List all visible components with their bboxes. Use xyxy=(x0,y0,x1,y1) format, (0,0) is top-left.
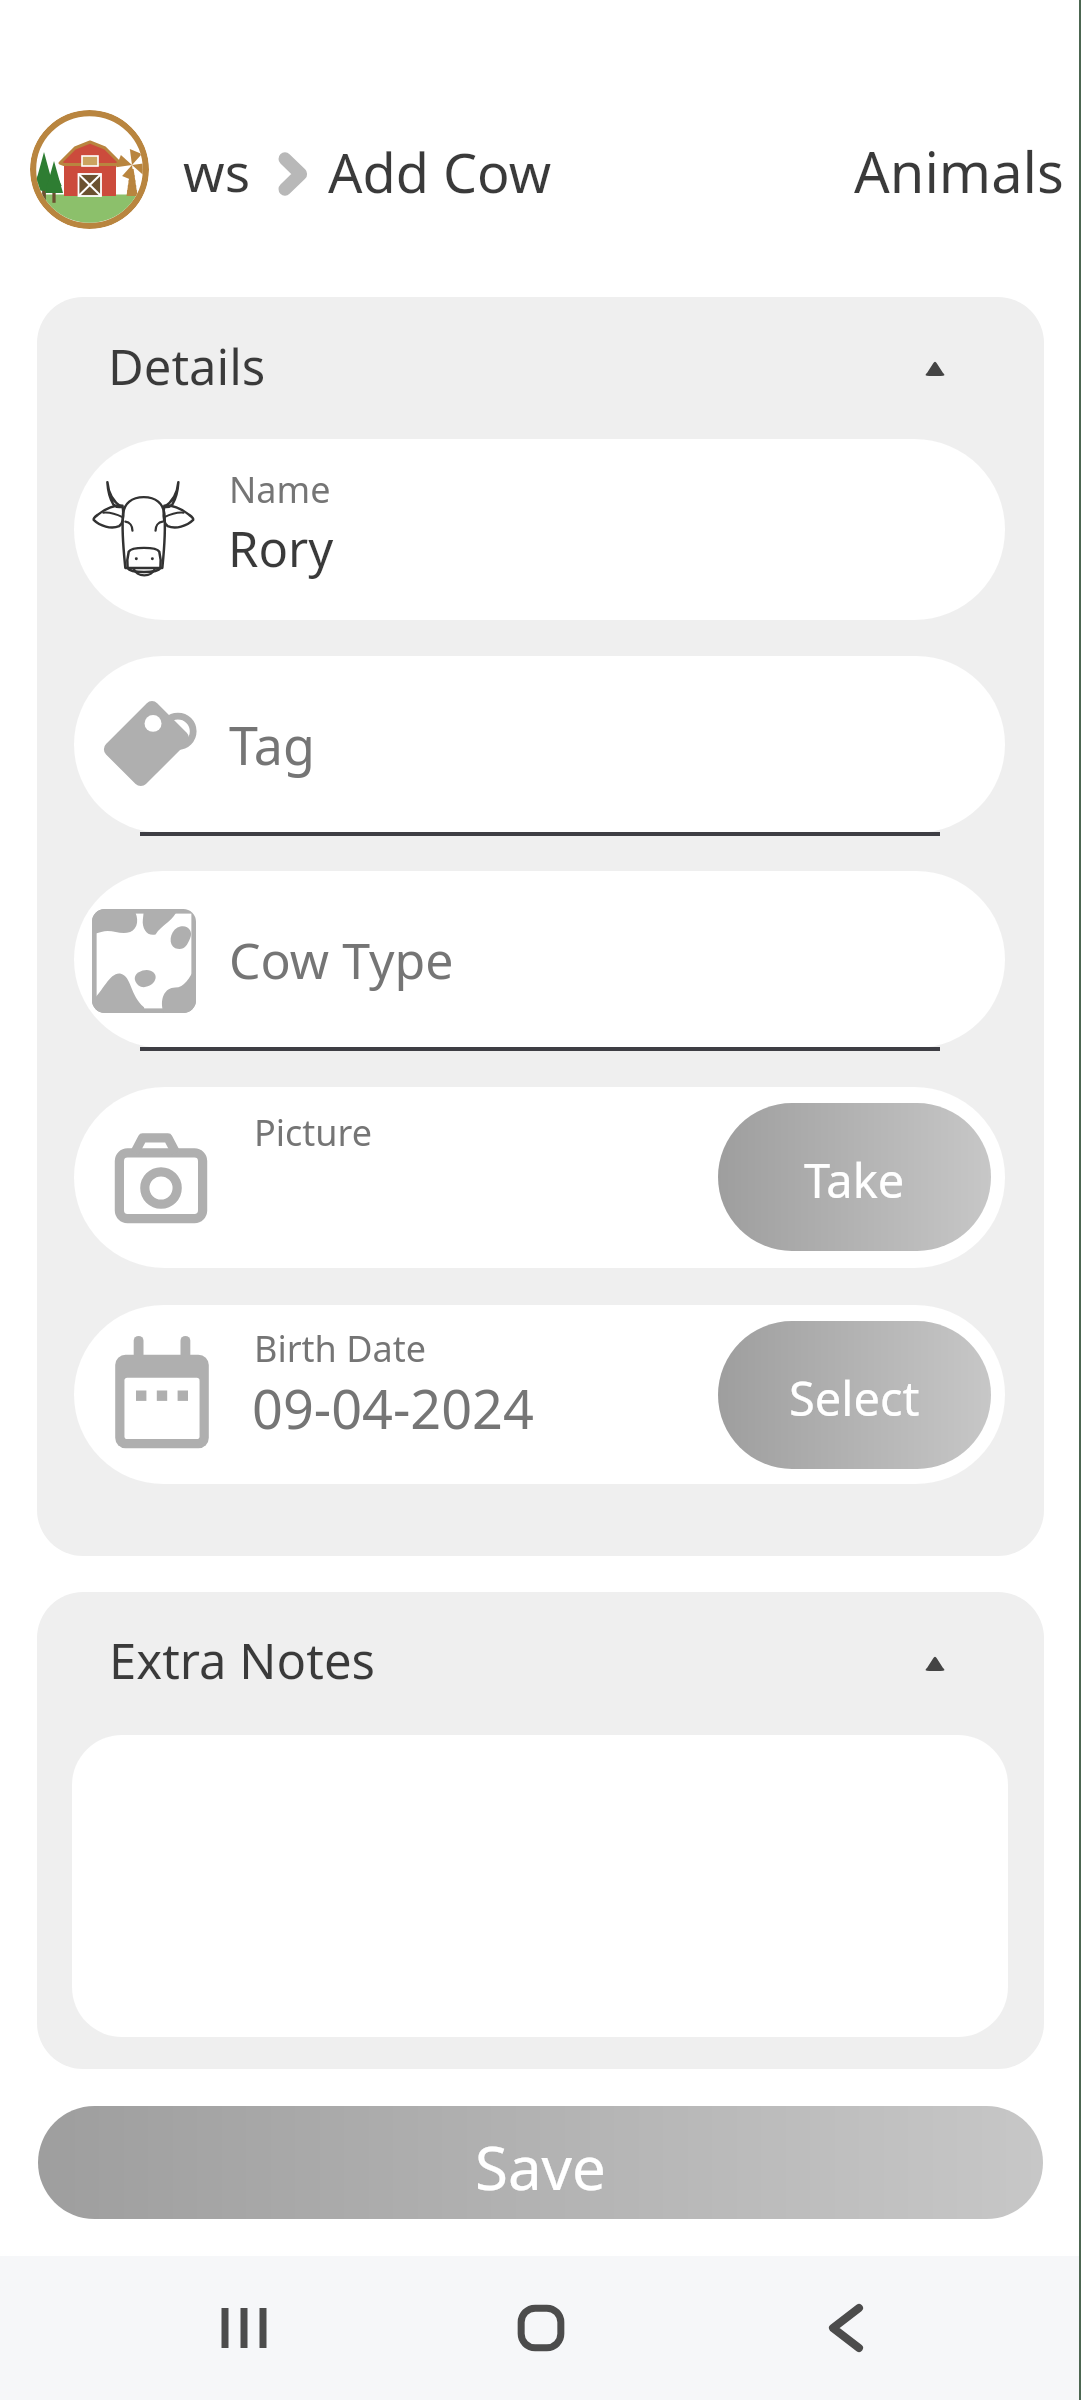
staticText: Picture xyxy=(254,1108,373,1157)
staticText: Add Cow xyxy=(328,135,552,205)
staticText: Extra Notes xyxy=(109,1627,376,1694)
button[interactable]: Save xyxy=(38,2106,1043,2219)
staticText: Take xyxy=(804,1148,905,1212)
staticText: Rory xyxy=(228,515,334,582)
button[interactable]: Animals xyxy=(840,136,1065,206)
staticText: Save xyxy=(475,2126,606,2208)
button[interactable]: Cow Type xyxy=(74,871,1005,1048)
button[interactable]: Select xyxy=(718,1321,991,1469)
staticText: 09-04-2024 xyxy=(252,1371,534,1445)
staticText: Name xyxy=(229,465,331,514)
button[interactable]: Birth Date xyxy=(74,1305,1005,1484)
button[interactable]: Collapse Details xyxy=(913,352,957,384)
button[interactable]: Recent apps xyxy=(173,2263,303,2393)
other: Breadcrumb separator xyxy=(278,148,308,200)
button[interactable]: Home xyxy=(476,2263,606,2393)
button[interactable]: Tag xyxy=(74,656,1005,833)
button[interactable]: Picture xyxy=(74,1087,1005,1268)
staticText: Details xyxy=(108,333,266,400)
staticText: Animals xyxy=(854,133,1064,203)
button[interactable]: Details xyxy=(37,297,1044,439)
button[interactable]: Add Cow xyxy=(322,136,560,206)
button[interactable]: Extra Notes xyxy=(37,1592,1044,1735)
staticText: Birth Date xyxy=(254,1324,426,1373)
staticText: ws xyxy=(183,135,251,201)
button[interactable]: ws xyxy=(176,138,258,204)
staticText: Cow Type xyxy=(229,926,454,994)
staticText: Select xyxy=(789,1366,920,1430)
button[interactable]: Take xyxy=(718,1103,991,1251)
button[interactable]: Farm home xyxy=(30,110,149,229)
button[interactable]: Collapse Extra Notes xyxy=(913,1647,957,1679)
button[interactable]: Back xyxy=(778,2263,908,2393)
staticText: Tag xyxy=(229,709,315,780)
button[interactable]: Name xyxy=(74,439,1005,620)
